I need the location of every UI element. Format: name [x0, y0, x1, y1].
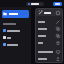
button[interactable]: [2, 35, 29, 40]
button[interactable]: [2, 28, 29, 33]
button[interactable]: [2, 42, 29, 47]
button[interactable]: [26, 2, 44, 6]
other: Context menu: [35, 8, 63, 63]
button[interactable]: [36, 55, 62, 62]
button[interactable]: [2, 10, 29, 18]
button[interactable]: [36, 39, 62, 46]
button[interactable]: [53, 2, 62, 6]
button[interactable]: [36, 25, 62, 32]
button[interactable]: [36, 18, 62, 25]
button[interactable]: [36, 9, 62, 16]
button[interactable]: [36, 48, 62, 55]
button[interactable]: [36, 32, 62, 39]
